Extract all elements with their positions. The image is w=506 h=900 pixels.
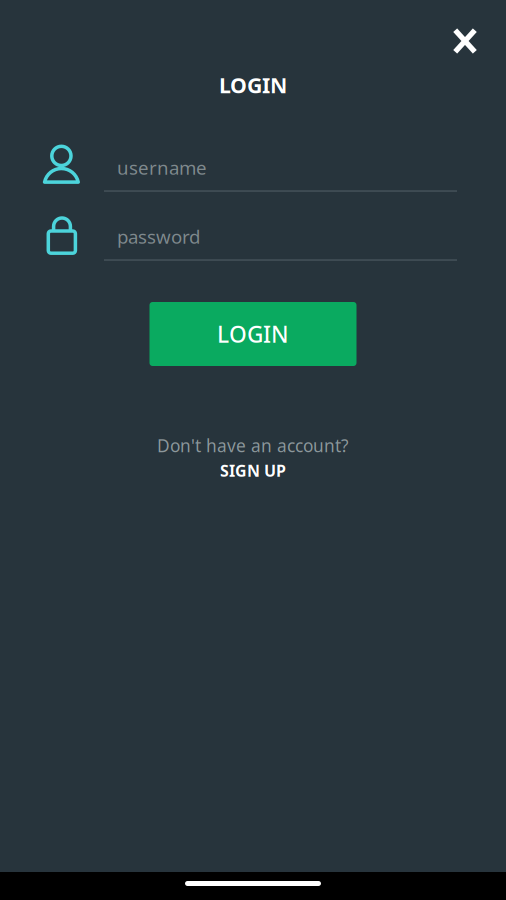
button[interactable]: SIGN UP bbox=[220, 460, 286, 481]
staticText: SIGN UP bbox=[220, 460, 286, 481]
button[interactable]: Close bbox=[443, 19, 487, 63]
staticText: Don't have an account? bbox=[157, 434, 349, 457]
staticText: LOGIN bbox=[219, 71, 287, 99]
button[interactable]: LOGIN bbox=[149, 302, 356, 366]
staticText: password bbox=[117, 224, 200, 249]
button[interactable]: password bbox=[104, 213, 457, 261]
staticText: username bbox=[117, 155, 207, 180]
staticText: LOGIN bbox=[217, 319, 289, 349]
button[interactable]: username bbox=[104, 144, 457, 192]
